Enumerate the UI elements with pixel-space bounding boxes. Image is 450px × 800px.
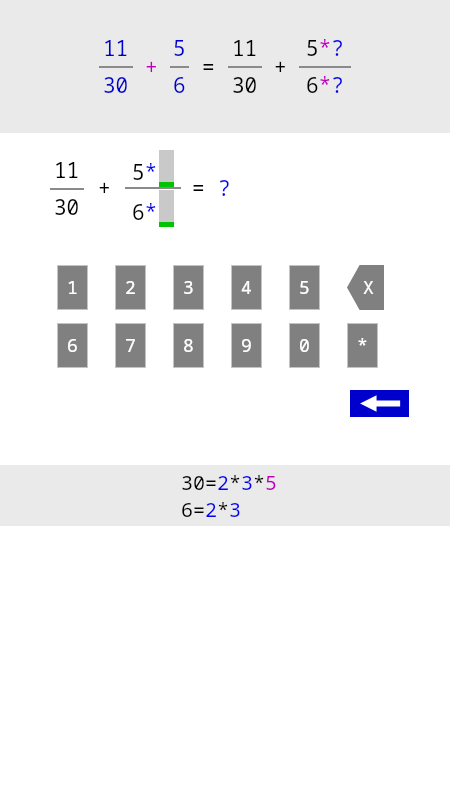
- staticText: 5*?: [306, 34, 344, 63]
- staticText: 30: [232, 71, 258, 100]
- staticText: 6: [67, 333, 78, 358]
- staticText: 4: [241, 275, 252, 300]
- staticText: +: [98, 174, 111, 203]
- staticText: 9: [241, 333, 252, 358]
- staticText: X: [363, 275, 374, 300]
- staticText: 30=2*3*5: [181, 469, 277, 496]
- button[interactable]: 5: [290, 266, 319, 309]
- staticText: *: [357, 333, 368, 358]
- staticText: =: [202, 53, 215, 82]
- staticText: 1: [67, 275, 78, 300]
- button[interactable]: 7: [116, 324, 145, 367]
- staticText: +: [145, 53, 158, 82]
- button[interactable]: Backspace: [347, 265, 384, 310]
- staticText: 30: [103, 71, 129, 100]
- button[interactable]: 4: [232, 266, 261, 309]
- button[interactable]: 0: [290, 324, 319, 367]
- staticText: 11: [54, 156, 80, 185]
- button[interactable]: Factor input: [159, 190, 174, 227]
- staticText: 11: [103, 34, 129, 63]
- button[interactable]: 9: [232, 324, 261, 367]
- button[interactable]: 8: [174, 324, 203, 367]
- staticText: 6*: [132, 198, 158, 227]
- staticText: =: [192, 174, 205, 203]
- button[interactable]: Next: [350, 390, 409, 417]
- staticText: ?: [218, 174, 231, 203]
- staticText: 6=2*3: [181, 496, 241, 523]
- staticText: 3: [183, 275, 194, 300]
- staticText: 8: [183, 333, 194, 358]
- staticText: 30: [54, 193, 80, 222]
- button[interactable]: 2: [116, 266, 145, 309]
- staticText: +: [274, 53, 287, 82]
- button[interactable]: 6: [58, 324, 87, 367]
- staticText: 5: [173, 34, 186, 63]
- staticText: 11: [232, 34, 258, 63]
- button[interactable]: 3: [174, 266, 203, 309]
- staticText: 6*?: [306, 71, 344, 100]
- staticText: 0: [299, 333, 310, 358]
- button[interactable]: *: [348, 324, 377, 367]
- staticText: 5: [299, 275, 310, 300]
- staticText: 6: [173, 71, 186, 100]
- button[interactable]: 1: [58, 266, 87, 309]
- staticText: 2: [125, 275, 136, 300]
- staticText: 7: [125, 333, 136, 358]
- button[interactable]: Factor input: [159, 150, 174, 187]
- staticText: 5*: [132, 158, 158, 187]
